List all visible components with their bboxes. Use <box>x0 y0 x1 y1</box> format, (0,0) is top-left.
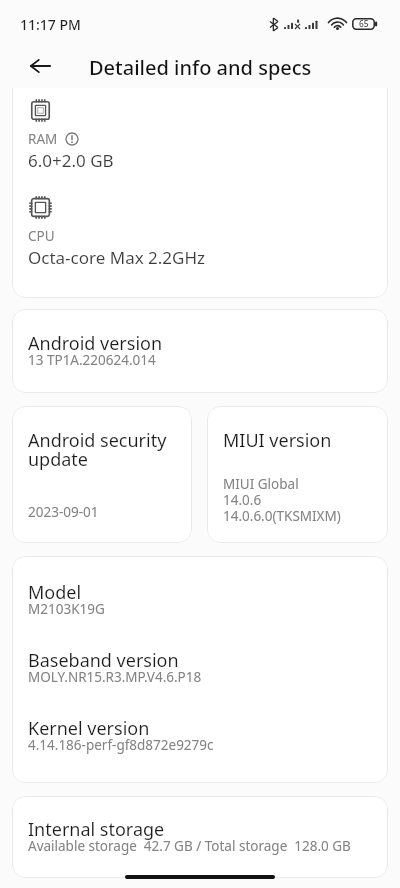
staticText: MIUI version <box>223 428 332 453</box>
button[interactable]: RAM <box>12 88 388 298</box>
button[interactable]: Android security update <box>12 406 192 543</box>
button[interactable]: Back <box>23 49 57 83</box>
staticText: MOLY.NR15.R3.MP.V4.6.P18 <box>28 668 202 686</box>
staticText: MIUI Global 14.0.6 14.0.6.0(TKSMIXM) <box>223 475 341 525</box>
staticText: Octa-core Max 2.2GHz <box>28 246 206 269</box>
staticText: Kernel version <box>28 716 150 741</box>
button[interactable]: Android version <box>12 309 388 393</box>
staticText: 4.14.186-perf-gf8d872e9279c <box>28 736 214 754</box>
staticText: Internal storage <box>28 817 165 842</box>
button[interactable]: Internal storage <box>12 796 388 878</box>
staticText: Available storage 42.7 GB / Total storag… <box>28 837 351 855</box>
staticText: 6.0+2.0 GB <box>28 149 114 172</box>
staticText: Detailed info and specs <box>89 54 312 81</box>
button[interactable]: MIUI version <box>207 406 388 543</box>
staticText: RAM <box>28 130 58 148</box>
staticText: Model <box>28 580 82 605</box>
staticText: 65 <box>359 18 369 30</box>
staticText: CPU <box>28 227 55 245</box>
staticText: Android security update <box>28 428 180 471</box>
staticText: 2023-09-01 <box>28 503 99 521</box>
staticText: Android version <box>28 331 163 356</box>
staticText: Baseband version <box>28 648 179 673</box>
staticText: 13 TP1A.220624.014 <box>28 351 156 369</box>
staticText: 11:17 PM <box>20 15 81 34</box>
button[interactable]: Model <box>12 556 388 783</box>
staticText: M2103K19G <box>28 600 105 618</box>
